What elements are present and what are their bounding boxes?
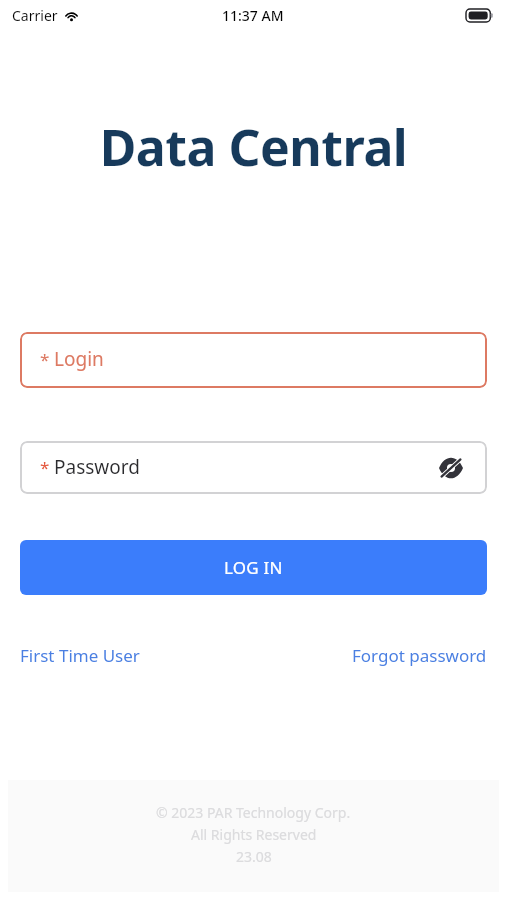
button[interactable]: First Time User [20, 640, 140, 671]
staticText: © 2023 PAR Technology Corp. [156, 803, 351, 822]
button[interactable]: Show password [433, 450, 469, 486]
button[interactable]: * [20, 441, 487, 494]
button[interactable]: Forgot password [352, 640, 487, 671]
button[interactable]: * [20, 332, 487, 388]
staticText: Login [54, 346, 104, 372]
staticText: LOG IN [224, 556, 283, 579]
button[interactable]: LOG IN [20, 540, 487, 595]
staticText: All Rights Reserved [191, 825, 317, 844]
staticText: First Time User [20, 644, 140, 667]
staticText: 11:37 AM [222, 6, 284, 25]
staticText: Password [54, 454, 140, 480]
staticText: * [40, 348, 50, 371]
staticText: * [40, 456, 50, 479]
staticText: 23.08 [236, 847, 272, 866]
staticText: Forgot password [352, 644, 487, 667]
staticText: Data Central [0, 113, 507, 181]
staticText: Carrier [12, 6, 58, 25]
